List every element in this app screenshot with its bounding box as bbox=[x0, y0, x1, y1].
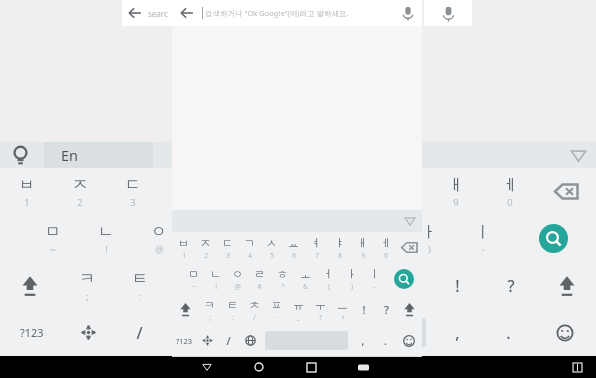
button[interactable]: ! bbox=[353, 294, 375, 325]
button[interactable]: Voice search bbox=[402, 7, 414, 19]
button[interactable]: ㅔ bbox=[374, 232, 397, 263]
button[interactable]: ㄱ bbox=[159, 168, 213, 215]
button[interactable]: Switch keyboard bbox=[352, 356, 374, 378]
button[interactable]: Expand suggestions bbox=[570, 147, 587, 164]
button[interactable]: Shift bbox=[172, 294, 198, 325]
button[interactable]: Back bbox=[172, 0, 422, 26]
button[interactable]: ㄴ bbox=[204, 263, 226, 294]
button[interactable]: ㅎ bbox=[271, 263, 294, 294]
button[interactable]: , bbox=[352, 325, 374, 356]
button[interactable]: Voice search bbox=[424, 0, 472, 26]
button[interactable]: ㅌ bbox=[113, 262, 166, 309]
button[interactable]: ㅏ bbox=[340, 263, 363, 294]
button[interactable]: ㅡ bbox=[331, 294, 353, 325]
button[interactable]: Home bbox=[248, 356, 270, 378]
button[interactable]: / bbox=[114, 309, 165, 356]
staticText: @ bbox=[235, 282, 241, 291]
button[interactable]: ㅛ bbox=[282, 232, 305, 263]
button[interactable]: ? bbox=[484, 262, 537, 309]
button[interactable]: ㅐ bbox=[429, 168, 483, 215]
button[interactable]: Back bbox=[122, 0, 174, 26]
button[interactable]: Change language bbox=[165, 309, 216, 356]
button[interactable]: ㅁ bbox=[182, 263, 204, 294]
button[interactable]: Backspace bbox=[397, 232, 422, 263]
button[interactable]: ㅏ bbox=[402, 215, 456, 262]
staticText: ㅍ bbox=[238, 269, 254, 289]
button[interactable]: Search bbox=[510, 215, 596, 262]
button[interactable]: Space bbox=[222, 318, 426, 347]
button[interactable]: ㅍ bbox=[219, 262, 272, 309]
button[interactable]: Screenshot bbox=[566, 356, 588, 378]
button[interactable]: / bbox=[218, 325, 239, 356]
button[interactable]: ㄷ bbox=[106, 168, 159, 215]
button[interactable]: ㅇ bbox=[132, 215, 186, 262]
button[interactable]: Shift bbox=[0, 262, 60, 309]
button[interactable]: Suggestions bbox=[9, 144, 32, 167]
button[interactable]: Search bbox=[386, 263, 422, 294]
button[interactable]: ㅜ bbox=[325, 262, 378, 309]
button[interactable]: ㅜ bbox=[309, 294, 331, 325]
button[interactable]: ! bbox=[431, 262, 484, 309]
button[interactable]: Back bbox=[196, 356, 218, 378]
button[interactable]: . bbox=[374, 325, 396, 356]
button[interactable]: ㅋ bbox=[198, 294, 221, 325]
button[interactable]: ㅈ bbox=[194, 232, 216, 263]
button[interactable]: Recent apps bbox=[300, 356, 322, 378]
button[interactable]: ㅠ bbox=[272, 262, 325, 309]
button[interactable]: ㄷ bbox=[216, 232, 238, 263]
button[interactable]: ㅂ bbox=[172, 232, 194, 263]
button[interactable]: ㄹ bbox=[186, 215, 240, 262]
staticText: ) bbox=[351, 282, 353, 291]
button[interactable]: , bbox=[432, 309, 483, 356]
button[interactable]: ㅐ bbox=[351, 232, 374, 263]
button[interactable]: ㄱ bbox=[238, 232, 260, 263]
button[interactable]: ㅣ bbox=[363, 263, 386, 294]
button[interactable]: ㅗ bbox=[294, 263, 317, 294]
button[interactable]: ?123 bbox=[172, 325, 197, 356]
button[interactable]: Emoji bbox=[396, 325, 422, 356]
button[interactable]: ㅠ bbox=[287, 294, 309, 325]
button[interactable]: ㅡ bbox=[378, 262, 431, 309]
button[interactable]: ?123 bbox=[0, 309, 63, 356]
button[interactable]: ㅓ bbox=[317, 263, 340, 294]
button[interactable]: ㅂ bbox=[0, 168, 53, 215]
button[interactable]: ㄴ bbox=[79, 215, 132, 262]
button[interactable]: Move keyboard bbox=[197, 325, 218, 356]
button[interactable]: ㅍ bbox=[265, 294, 287, 325]
button[interactable]: ㅔ bbox=[483, 168, 537, 215]
button[interactable]: En bbox=[44, 142, 153, 168]
button[interactable]: Backspace bbox=[537, 168, 596, 215]
button[interactable]: ㅗ bbox=[294, 215, 348, 262]
button[interactable]: ㅅ bbox=[213, 168, 267, 215]
button[interactable]: ㅈ bbox=[53, 168, 106, 215]
button[interactable]: ? bbox=[375, 294, 397, 325]
button[interactable]: Shift bbox=[537, 262, 596, 309]
button[interactable]: ㅇ bbox=[226, 263, 248, 294]
button[interactable]: Move keyboard bbox=[63, 309, 114, 356]
button[interactable]: . bbox=[483, 309, 534, 356]
button[interactable]: ㅑ bbox=[375, 168, 429, 215]
button[interactable]: ㅛ bbox=[267, 168, 321, 215]
button[interactable]: ㅋ bbox=[60, 262, 113, 309]
button[interactable]: ㅑ bbox=[328, 232, 351, 263]
button[interactable]: ㄹ bbox=[248, 263, 271, 294]
button[interactable]: ㅓ bbox=[348, 215, 402, 262]
staticText: + bbox=[341, 313, 345, 322]
button[interactable]: Emoji bbox=[534, 309, 596, 356]
button[interactable]: Shift bbox=[397, 294, 422, 325]
staticText: ? bbox=[319, 313, 322, 322]
button[interactable]: Change language bbox=[239, 325, 261, 356]
button[interactable]: ㅕ bbox=[321, 168, 375, 215]
button[interactable]: ㅊ bbox=[166, 262, 219, 309]
button[interactable]: ㅊ bbox=[243, 294, 265, 325]
button[interactable]: ㅅ bbox=[260, 232, 282, 263]
button[interactable]: ㅣ bbox=[456, 215, 510, 262]
button[interactable]: ㅌ bbox=[221, 294, 243, 325]
button[interactable]: Expand suggestions bbox=[404, 215, 416, 227]
button[interactable]: ㅎ bbox=[240, 215, 294, 262]
button[interactable]: ㅁ bbox=[26, 215, 79, 262]
button[interactable]: ㅕ bbox=[305, 232, 328, 263]
staticText: ? bbox=[384, 302, 389, 317]
